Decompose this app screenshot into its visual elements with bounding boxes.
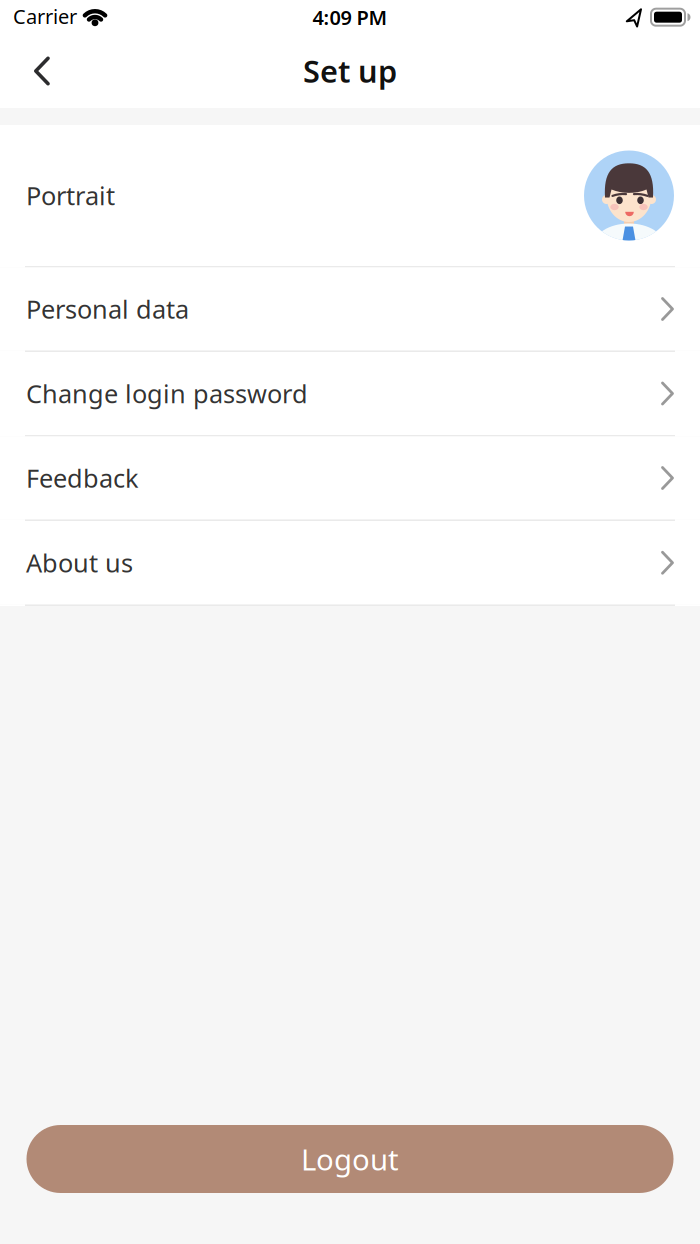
staticText: Carrier xyxy=(13,3,77,30)
staticText: Personal data xyxy=(26,292,189,326)
button[interactable]: Personal data xyxy=(0,267,700,350)
button[interactable]: Back xyxy=(20,46,64,96)
staticText: Logout xyxy=(301,1139,399,1178)
button[interactable]: Logout xyxy=(26,1125,673,1193)
staticText: Portrait xyxy=(26,179,115,212)
staticText: Set up xyxy=(303,50,397,91)
staticText: Feedback xyxy=(26,461,139,495)
button[interactable]: Change login password xyxy=(0,352,700,435)
button[interactable]: Feedback xyxy=(0,436,700,519)
staticText: Change login password xyxy=(26,377,308,410)
button[interactable]: Portrait xyxy=(0,125,700,266)
staticText: 4:09 PM xyxy=(312,4,387,31)
staticText: About us xyxy=(26,546,133,579)
button[interactable]: About us xyxy=(0,521,700,604)
